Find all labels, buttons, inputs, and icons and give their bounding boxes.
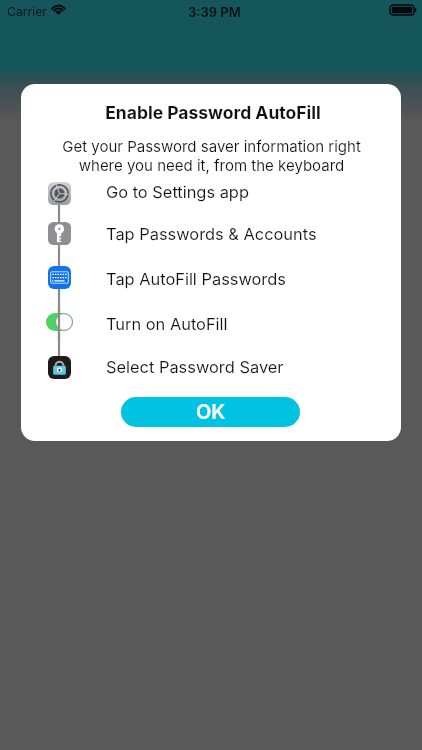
button[interactable]: Settings: [21, 174, 401, 208]
staticText: Select Password Saver: [106, 357, 284, 377]
other: Keyboard: [48, 266, 71, 289]
other: Passwords: [48, 222, 71, 245]
staticText: Enable Password AutoFill: [105, 102, 321, 123]
staticText: Tap Passwords & Accounts: [106, 224, 317, 244]
button[interactable]: Passwords: [21, 216, 401, 250]
button[interactable]: Keyboard: [21, 261, 401, 295]
button[interactable]: Password Saver: [21, 349, 401, 383]
staticText: 3:39 PM: [188, 4, 241, 20]
staticText: Carrier: [7, 4, 47, 19]
staticText: Turn on AutoFill: [106, 314, 228, 334]
other: Password Saver: [48, 356, 71, 379]
staticText: Get your Password saver information righ…: [62, 137, 361, 174]
other: Toggle on: [46, 313, 73, 331]
button[interactable]: OK: [121, 397, 300, 427]
staticText: Tap AutoFill Passwords: [106, 269, 286, 289]
other: Settings: [48, 182, 71, 205]
button[interactable]: Toggle on: [21, 306, 401, 340]
staticText: Go to Settings app: [106, 182, 249, 202]
staticText: OK: [196, 400, 226, 424]
